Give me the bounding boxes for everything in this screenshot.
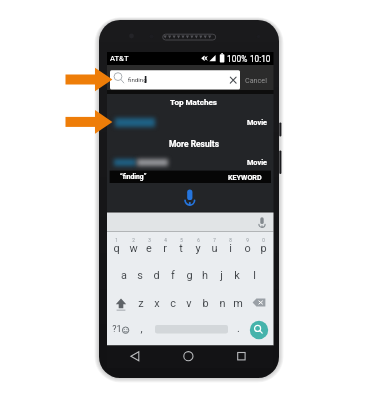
staticText: m — [233, 297, 243, 310]
staticText: c — [170, 297, 176, 310]
staticText: KEYWORD — [228, 173, 262, 181]
button[interactable]: Search — [250, 321, 268, 339]
staticText: 8 — [229, 238, 232, 243]
button[interactable] — [115, 118, 155, 127]
staticText: , — [140, 322, 143, 335]
button[interactable]: Cancel — [242, 70, 272, 89]
staticText: 3 — [148, 238, 151, 243]
button[interactable]: Recents — [232, 346, 250, 366]
staticText: i — [229, 242, 232, 255]
button[interactable]: finding keyword — [110, 171, 271, 183]
staticText: a — [121, 269, 127, 282]
staticText: w — [129, 242, 138, 255]
button[interactable]: Voice search — [180, 186, 200, 208]
staticText: . — [237, 322, 240, 335]
staticText: Movie — [246, 158, 267, 167]
staticText: g — [186, 269, 193, 282]
staticText: Movie — [246, 118, 267, 127]
staticText: 6 — [197, 238, 200, 243]
staticText: p — [260, 242, 267, 255]
staticText: 5 — [180, 238, 183, 243]
staticText: l — [253, 269, 256, 282]
staticText: 9 — [246, 238, 249, 243]
staticText: f — [171, 269, 175, 282]
staticText: u — [211, 242, 218, 255]
staticText: “finding” — [120, 173, 147, 181]
staticText: y — [195, 242, 201, 255]
staticText: t — [179, 242, 183, 255]
button[interactable]: Clear query — [228, 72, 240, 87]
staticText: k — [234, 269, 240, 282]
staticText: e — [146, 242, 152, 255]
button[interactable]: Back — [126, 346, 144, 366]
button[interactable] — [114, 159, 136, 166]
staticText: 7 — [213, 238, 216, 243]
staticText: z — [138, 297, 144, 310]
staticText: ?1 — [112, 324, 122, 335]
staticText: 0 — [262, 238, 265, 243]
staticText: 4 — [164, 238, 167, 243]
staticText: v — [186, 297, 192, 310]
staticText: AT&T — [110, 54, 129, 63]
staticText: Top Matches — [170, 97, 217, 106]
staticText: 1 — [115, 238, 118, 243]
staticText: b — [202, 297, 209, 310]
staticText: q — [113, 242, 120, 255]
staticText: Cancel — [245, 76, 267, 84]
staticText: s — [137, 269, 143, 282]
staticText: x — [154, 297, 160, 310]
staticText: j — [220, 269, 223, 282]
staticText: h — [202, 269, 208, 282]
staticText: 100% — [227, 54, 248, 64]
staticText: 2 — [132, 238, 135, 243]
staticText: d — [153, 269, 160, 282]
staticText: 10:10 — [250, 54, 271, 64]
button[interactable]: Voice input — [253, 214, 271, 230]
staticText: finding — [128, 76, 147, 83]
staticText: More Results — [169, 139, 219, 149]
button[interactable]: Home — [180, 346, 198, 366]
button[interactable]: Search field — [110, 70, 240, 89]
staticText: o — [244, 242, 251, 255]
staticText: r — [163, 242, 167, 255]
staticText: n — [219, 297, 226, 310]
